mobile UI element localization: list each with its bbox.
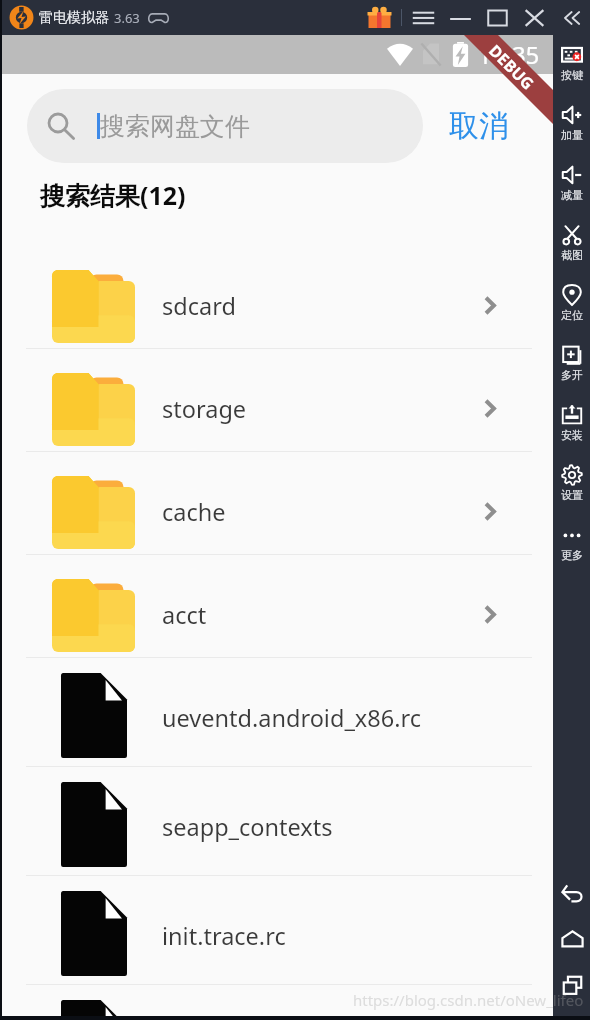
- other: Open: [484, 605, 496, 624]
- staticText: sdcard: [162, 290, 236, 322]
- staticText: DEBUG: [484, 40, 539, 94]
- staticText: 搜索结果(12): [40, 178, 186, 212]
- staticText: 减量: [561, 188, 583, 202]
- button[interactable]: Search: [27, 89, 423, 163]
- button[interactable]: ueventd.android_x86.rc: [2, 658, 553, 767]
- staticText: 10:35: [478, 38, 540, 71]
- other: Gamepad: [148, 11, 169, 24]
- button[interactable]: Back: [557, 878, 587, 908]
- staticText: 按键: [561, 68, 583, 82]
- button[interactable]: seapp_contexts: [2, 767, 553, 876]
- button[interactable]: 取消: [447, 101, 511, 151]
- button[interactable]: 定位: [553, 284, 590, 344]
- button[interactable]: 减量: [553, 164, 590, 224]
- staticText: 3.63: [114, 9, 140, 27]
- button[interactable]: Minimize: [442, 3, 479, 33]
- other: Search: [46, 111, 76, 141]
- button[interactable]: Recents: [557, 970, 587, 1000]
- staticText: 更多: [561, 548, 583, 562]
- button[interactable]: 设置: [553, 464, 590, 524]
- button[interactable]: cache: [2, 452, 553, 555]
- staticText: 多开: [561, 368, 583, 382]
- button[interactable]: Gift: [367, 5, 392, 30]
- button[interactable]: Maximize: [479, 3, 516, 33]
- staticText: 定位: [561, 308, 583, 322]
- staticText: seapp_contexts: [162, 811, 333, 843]
- staticText: acct: [162, 599, 207, 631]
- staticText: ueventd.android_x86.rc: [162, 702, 421, 734]
- other: Open: [484, 399, 496, 418]
- button[interactable]: acct: [2, 555, 553, 658]
- button[interactable]: 截图: [553, 224, 590, 284]
- button[interactable]: 加量: [553, 104, 590, 164]
- button[interactable]: sdcard: [2, 246, 553, 349]
- button[interactable]: Home: [557, 924, 587, 954]
- other: Open: [484, 502, 496, 521]
- staticText: 安装: [561, 428, 583, 442]
- staticText: init.trace.rc: [162, 920, 286, 952]
- staticText: cache: [162, 496, 226, 528]
- button[interactable]: 安装: [553, 404, 590, 464]
- button[interactable]: 按键: [553, 44, 590, 104]
- other: Open: [484, 296, 496, 315]
- staticText: 加量: [561, 128, 583, 142]
- staticText: storage: [162, 393, 247, 425]
- button[interactable]: Collapse: [560, 6, 584, 30]
- button[interactable]: 多开: [553, 344, 590, 404]
- button[interactable]: init.trace.rc: [2, 876, 553, 985]
- button[interactable]: Close: [516, 3, 553, 33]
- staticText: 截图: [561, 248, 583, 262]
- staticText: 设置: [561, 488, 583, 502]
- staticText: 雷电模拟器: [39, 9, 109, 27]
- button[interactable]: 更多: [553, 524, 590, 584]
- button[interactable]: storage: [2, 349, 553, 452]
- button[interactable]: init.rc: [2, 985, 553, 1020]
- staticText: 取消: [449, 107, 509, 145]
- staticText: 搜索网盘文件: [100, 111, 250, 142]
- staticText: https://blog.csdn.net/oNew_lifeo: [353, 990, 584, 1010]
- button[interactable]: Menu: [405, 3, 442, 33]
